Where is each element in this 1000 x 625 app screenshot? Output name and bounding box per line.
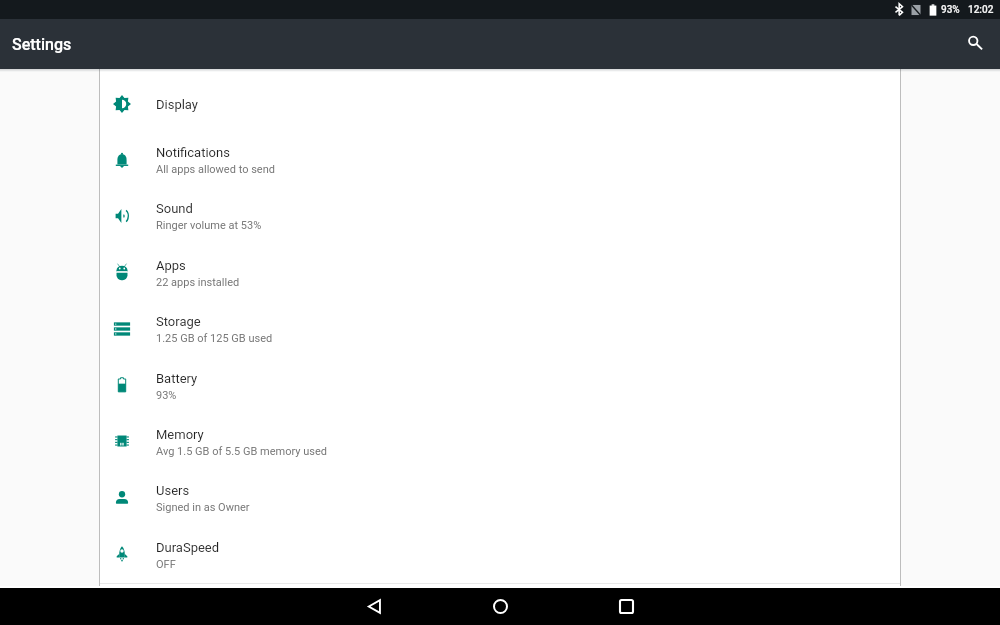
staticText: Storage <box>156 314 201 329</box>
staticText: DuraSpeed <box>156 540 220 555</box>
button[interactable]: Battery <box>100 358 900 414</box>
staticText: Ringer volume at 53% <box>156 219 262 232</box>
button[interactable]: Search <box>957 24 993 60</box>
button[interactable]: DuraSpeed <box>100 527 900 583</box>
staticText: Avg 1.5 GB of 5.5 GB memory used <box>156 445 327 458</box>
button[interactable]: Display <box>100 76 900 132</box>
staticText: Apps <box>156 258 186 273</box>
staticText: Signed in as Owner <box>156 501 250 514</box>
staticText: 22 apps installed <box>156 276 240 289</box>
button[interactable]: Storage <box>100 301 900 358</box>
staticText: 93% <box>941 4 960 16</box>
staticText: 93% <box>156 389 177 402</box>
button[interactable]: Sound <box>100 188 900 245</box>
staticText: Display <box>156 97 198 112</box>
staticText: Battery <box>156 371 198 386</box>
staticText: Notifications <box>156 145 230 160</box>
button[interactable]: Memory <box>100 414 900 470</box>
staticText: 12:02 <box>968 4 994 16</box>
button[interactable]: Notifications <box>100 132 900 188</box>
button[interactable]: Recents <box>606 588 646 625</box>
staticText: All apps allowed to send <box>156 163 275 176</box>
staticText: Memory <box>156 427 204 442</box>
staticText: Users <box>156 483 190 498</box>
staticText: Settings <box>12 35 72 54</box>
staticText: OFF <box>156 558 176 571</box>
button[interactable]: Apps <box>100 245 900 301</box>
button[interactable]: Back <box>354 588 394 625</box>
button[interactable]: Users <box>100 470 900 527</box>
staticText: Sound <box>156 201 193 216</box>
staticText: 1.25 GB of 125 GB used <box>156 332 273 345</box>
button[interactable]: Home <box>480 588 520 625</box>
